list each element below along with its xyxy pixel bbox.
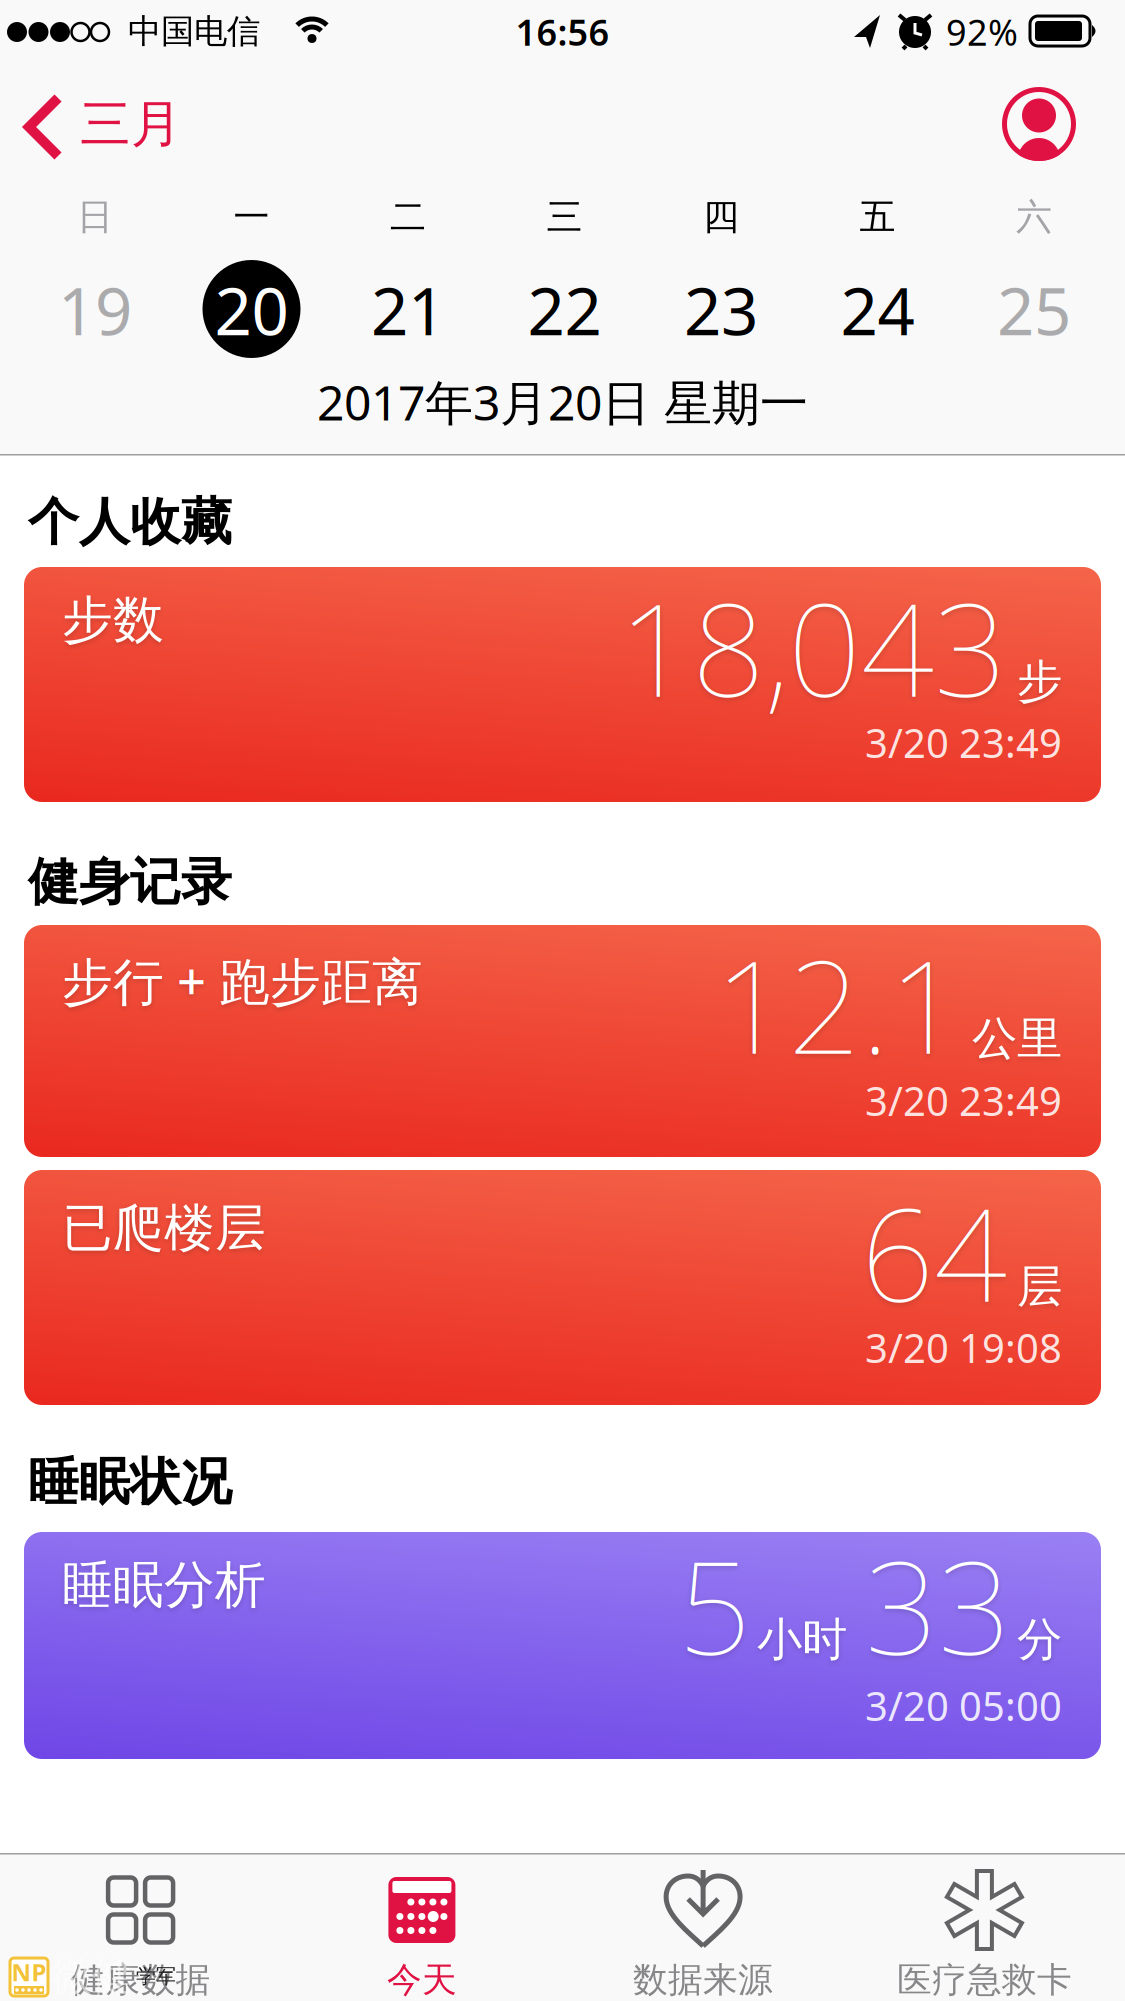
staticText: 23 (684, 267, 758, 353)
staticText: 5 (678, 1520, 751, 1690)
staticText: 小时 (757, 1612, 847, 1667)
staticText: 健康数据 (71, 1959, 211, 2001)
staticText: 已爬楼层 (62, 1197, 266, 1259)
staticText: 三月 (80, 93, 182, 155)
staticText: 3/20 23:49 (865, 716, 1062, 769)
staticText: 公里 (972, 1011, 1062, 1066)
staticText: 3/20 19:08 (865, 1321, 1062, 1374)
staticText: 19 (58, 267, 132, 353)
staticText: 六 (1016, 195, 1052, 239)
staticText: 33 (865, 1520, 1011, 1690)
staticText: 步数 (62, 589, 164, 651)
staticText: 25 (997, 267, 1071, 353)
staticText: 层 (1017, 1259, 1062, 1314)
staticText: 四 (703, 195, 739, 239)
staticText: 中国电信 (128, 11, 260, 52)
staticText: 微健 (52, 1952, 132, 2001)
staticText: 睡眠分析 (62, 1554, 266, 1616)
staticText: 今天 (387, 1959, 457, 2001)
staticText: 数据来源 (633, 1959, 773, 2001)
staticText: 五 (859, 195, 895, 239)
staticText: 64 (861, 1167, 1007, 1337)
staticText: 医疗急救卡 (897, 1959, 1072, 2001)
staticText: 3/20 05:00 (865, 1679, 1062, 1732)
staticText: 12.1 (715, 919, 962, 1089)
staticText: 步行 + 跑步距离 (62, 947, 423, 1014)
staticText: 健身记录 (28, 851, 232, 913)
staticText: 步 (1017, 654, 1062, 709)
staticText: 三 (546, 195, 582, 239)
staticText: 18,043 (619, 562, 1007, 732)
staticText: 学军 (136, 1964, 176, 1989)
staticText: 20 (214, 267, 288, 353)
staticText: 2017年3月20日 星期一 (317, 370, 808, 434)
staticText: 个人收藏 (28, 491, 232, 553)
staticText: 一 (233, 195, 269, 239)
staticText: NP (11, 1956, 46, 1988)
staticText: 22 (527, 267, 601, 353)
staticText: 21 (371, 267, 445, 353)
staticText: 16:56 (515, 8, 609, 56)
staticText: 日 (77, 195, 113, 239)
staticText: 3/20 23:49 (865, 1074, 1062, 1127)
staticText: 92% (946, 8, 1018, 56)
staticText: 24 (840, 267, 914, 353)
staticText: 二 (390, 195, 426, 239)
staticText: 分 (1017, 1612, 1062, 1667)
staticText: 睡眠状况 (28, 1451, 232, 1513)
